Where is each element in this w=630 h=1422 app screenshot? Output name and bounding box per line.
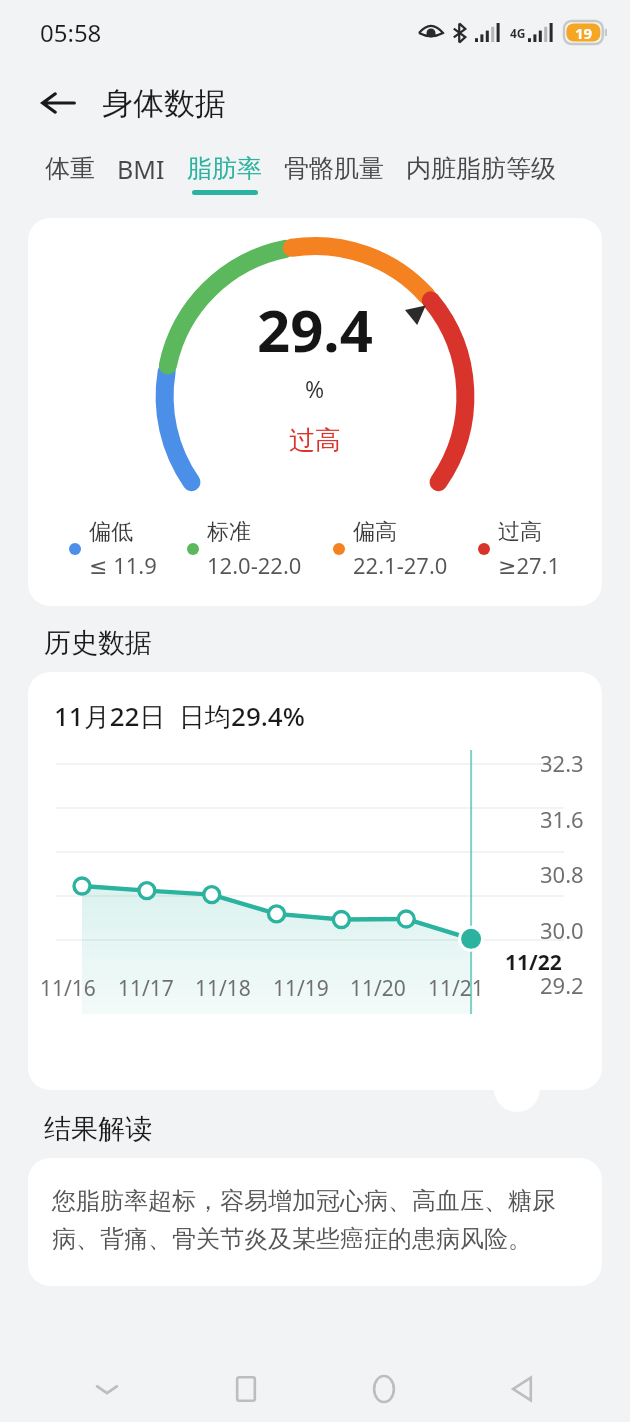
staticText: 05:58: [40, 16, 102, 49]
staticText: 32.3: [540, 748, 584, 778]
staticText: 11/16: [40, 974, 96, 1003]
button[interactable]: 骨骼肌量: [273, 150, 395, 198]
staticText: 体重: [45, 153, 95, 184]
staticText: 偏高: [353, 518, 397, 546]
staticText: 标准: [207, 518, 251, 546]
staticText: ≤ 11.9: [89, 550, 157, 580]
staticText: 11/17: [118, 974, 174, 1003]
staticText: 12.0-22.0: [207, 550, 302, 580]
staticText: 19: [575, 23, 593, 43]
staticText: 11/22: [505, 948, 562, 977]
button[interactable]: Recents: [215, 1358, 277, 1420]
staticText: 11/19: [273, 974, 329, 1003]
staticText: 身体数据: [102, 84, 226, 123]
staticText: 22.1-27.0: [353, 550, 448, 580]
staticText: 历史数据: [44, 626, 152, 660]
staticText: 30.0: [540, 915, 584, 945]
staticText: 您脂肪率超标，容易增加冠心病、高血压、糖尿病、背痛、骨关节炎及某些癌症的患病风险…: [52, 1186, 584, 1255]
staticText: 31.6: [540, 804, 584, 834]
staticText: 结果解读: [44, 1112, 152, 1146]
button[interactable]: Scroll handle: [494, 1066, 540, 1112]
staticText: 过高: [498, 518, 542, 546]
staticText: 11/18: [195, 974, 251, 1003]
button[interactable]: Back: [34, 79, 82, 127]
button[interactable]: 脂肪率: [176, 150, 273, 198]
button[interactable]: Hide: [76, 1358, 138, 1420]
staticText: 29.4: [257, 290, 373, 369]
staticText: 4G: [510, 25, 526, 41]
button[interactable]: BMI: [106, 149, 176, 200]
staticText: 内脏脂肪等级: [406, 153, 556, 184]
staticText: 脂肪率: [187, 153, 262, 184]
staticText: 30.8: [540, 859, 584, 889]
staticText: 11/20: [350, 974, 406, 1003]
staticText: 骨骼肌量: [284, 153, 384, 184]
button[interactable]: Back: [492, 1358, 554, 1420]
button[interactable]: 内脏脂肪等级: [395, 150, 567, 198]
button[interactable]: Home: [353, 1358, 415, 1420]
staticText: 过高: [289, 424, 341, 457]
staticText: 29.2: [540, 970, 584, 1000]
staticText: 11/21: [428, 974, 484, 1003]
staticText: BMI: [117, 152, 165, 186]
button[interactable]: 体重: [34, 150, 106, 198]
staticText: 偏低: [89, 518, 133, 546]
staticText: 11月22日 日均29.4%: [54, 698, 305, 734]
staticText: ≥27.1: [498, 550, 561, 580]
staticText: %: [305, 373, 325, 404]
